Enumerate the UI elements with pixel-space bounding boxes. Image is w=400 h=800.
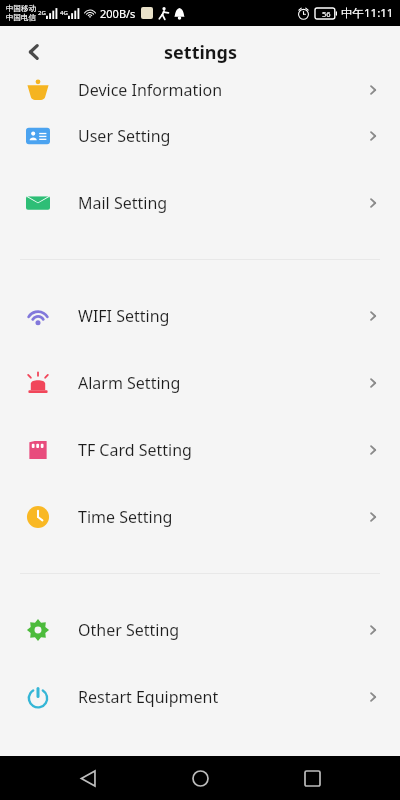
- button[interactable]: Alarm Setting: [0, 349, 400, 416]
- button[interactable]: Restart Equipment: [0, 663, 400, 730]
- button[interactable]: Back: [64, 756, 112, 800]
- button[interactable]: Time Setting: [0, 483, 400, 550]
- staticText: Device Information: [78, 79, 223, 101]
- button[interactable]: Mail Setting: [0, 169, 400, 236]
- staticText: User Setting: [78, 125, 171, 147]
- staticText: settings: [164, 40, 237, 65]
- staticText: Restart Equipment: [78, 686, 219, 708]
- staticText: Alarm Setting: [78, 372, 181, 394]
- staticText: 中国移动: [6, 4, 36, 13]
- button[interactable]: Home: [176, 756, 224, 800]
- staticText: 200B/s: [100, 6, 136, 21]
- staticText: WIFI Setting: [78, 305, 170, 327]
- staticText: 中国电信: [6, 13, 36, 22]
- button[interactable]: TF Card Setting: [0, 416, 400, 483]
- staticText: 中午11:11: [341, 5, 394, 21]
- staticText: TF Card Setting: [78, 439, 192, 461]
- staticText: 2G: [38, 9, 46, 17]
- button[interactable]: Recents: [288, 756, 336, 800]
- button[interactable]: Device Information: [0, 78, 400, 102]
- staticText: 4G: [60, 9, 68, 17]
- staticText: Time Setting: [78, 506, 173, 528]
- button[interactable]: Other Setting: [0, 596, 400, 663]
- staticText: Other Setting: [78, 619, 180, 641]
- staticText: 56: [322, 9, 331, 19]
- button[interactable]: User Setting: [0, 102, 400, 169]
- button[interactable]: WIFI Setting: [0, 282, 400, 349]
- button[interactable]: Back: [14, 32, 54, 72]
- staticText: Mail Setting: [78, 192, 168, 214]
